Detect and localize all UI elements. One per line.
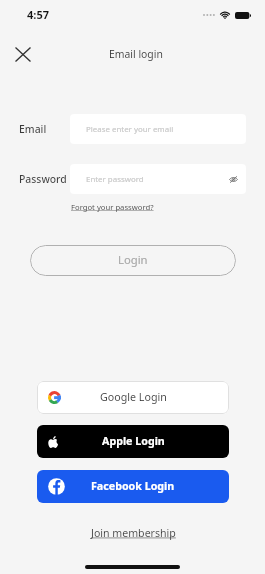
staticText: 4:57 <box>27 7 49 22</box>
button[interactable]: Google Login <box>37 381 229 414</box>
button[interactable]: Close <box>10 42 35 67</box>
button[interactable]: Forgot your password? <box>67 199 158 215</box>
staticText: Email login <box>109 47 163 61</box>
staticText: Password <box>19 172 67 186</box>
button[interactable]: Enter password <box>70 164 246 194</box>
button[interactable]: Login <box>30 245 236 276</box>
staticText: Apple Login <box>102 434 165 449</box>
staticText: Google Login <box>100 390 167 405</box>
button[interactable]: Facebook Login <box>37 470 229 503</box>
staticText: Login <box>118 252 148 267</box>
staticText: Join membership <box>91 526 176 540</box>
button[interactable]: Show password <box>229 176 238 183</box>
staticText: Email <box>19 122 47 136</box>
staticText: Forgot your password? <box>71 202 154 212</box>
button[interactable]: Apple Login <box>37 425 229 458</box>
button[interactable]: Please enter your email <box>70 114 246 144</box>
staticText: Please enter your email <box>86 124 174 135</box>
staticText: Enter password <box>86 174 144 185</box>
button[interactable]: Join membership <box>87 523 180 543</box>
staticText: Facebook Login <box>91 479 175 494</box>
